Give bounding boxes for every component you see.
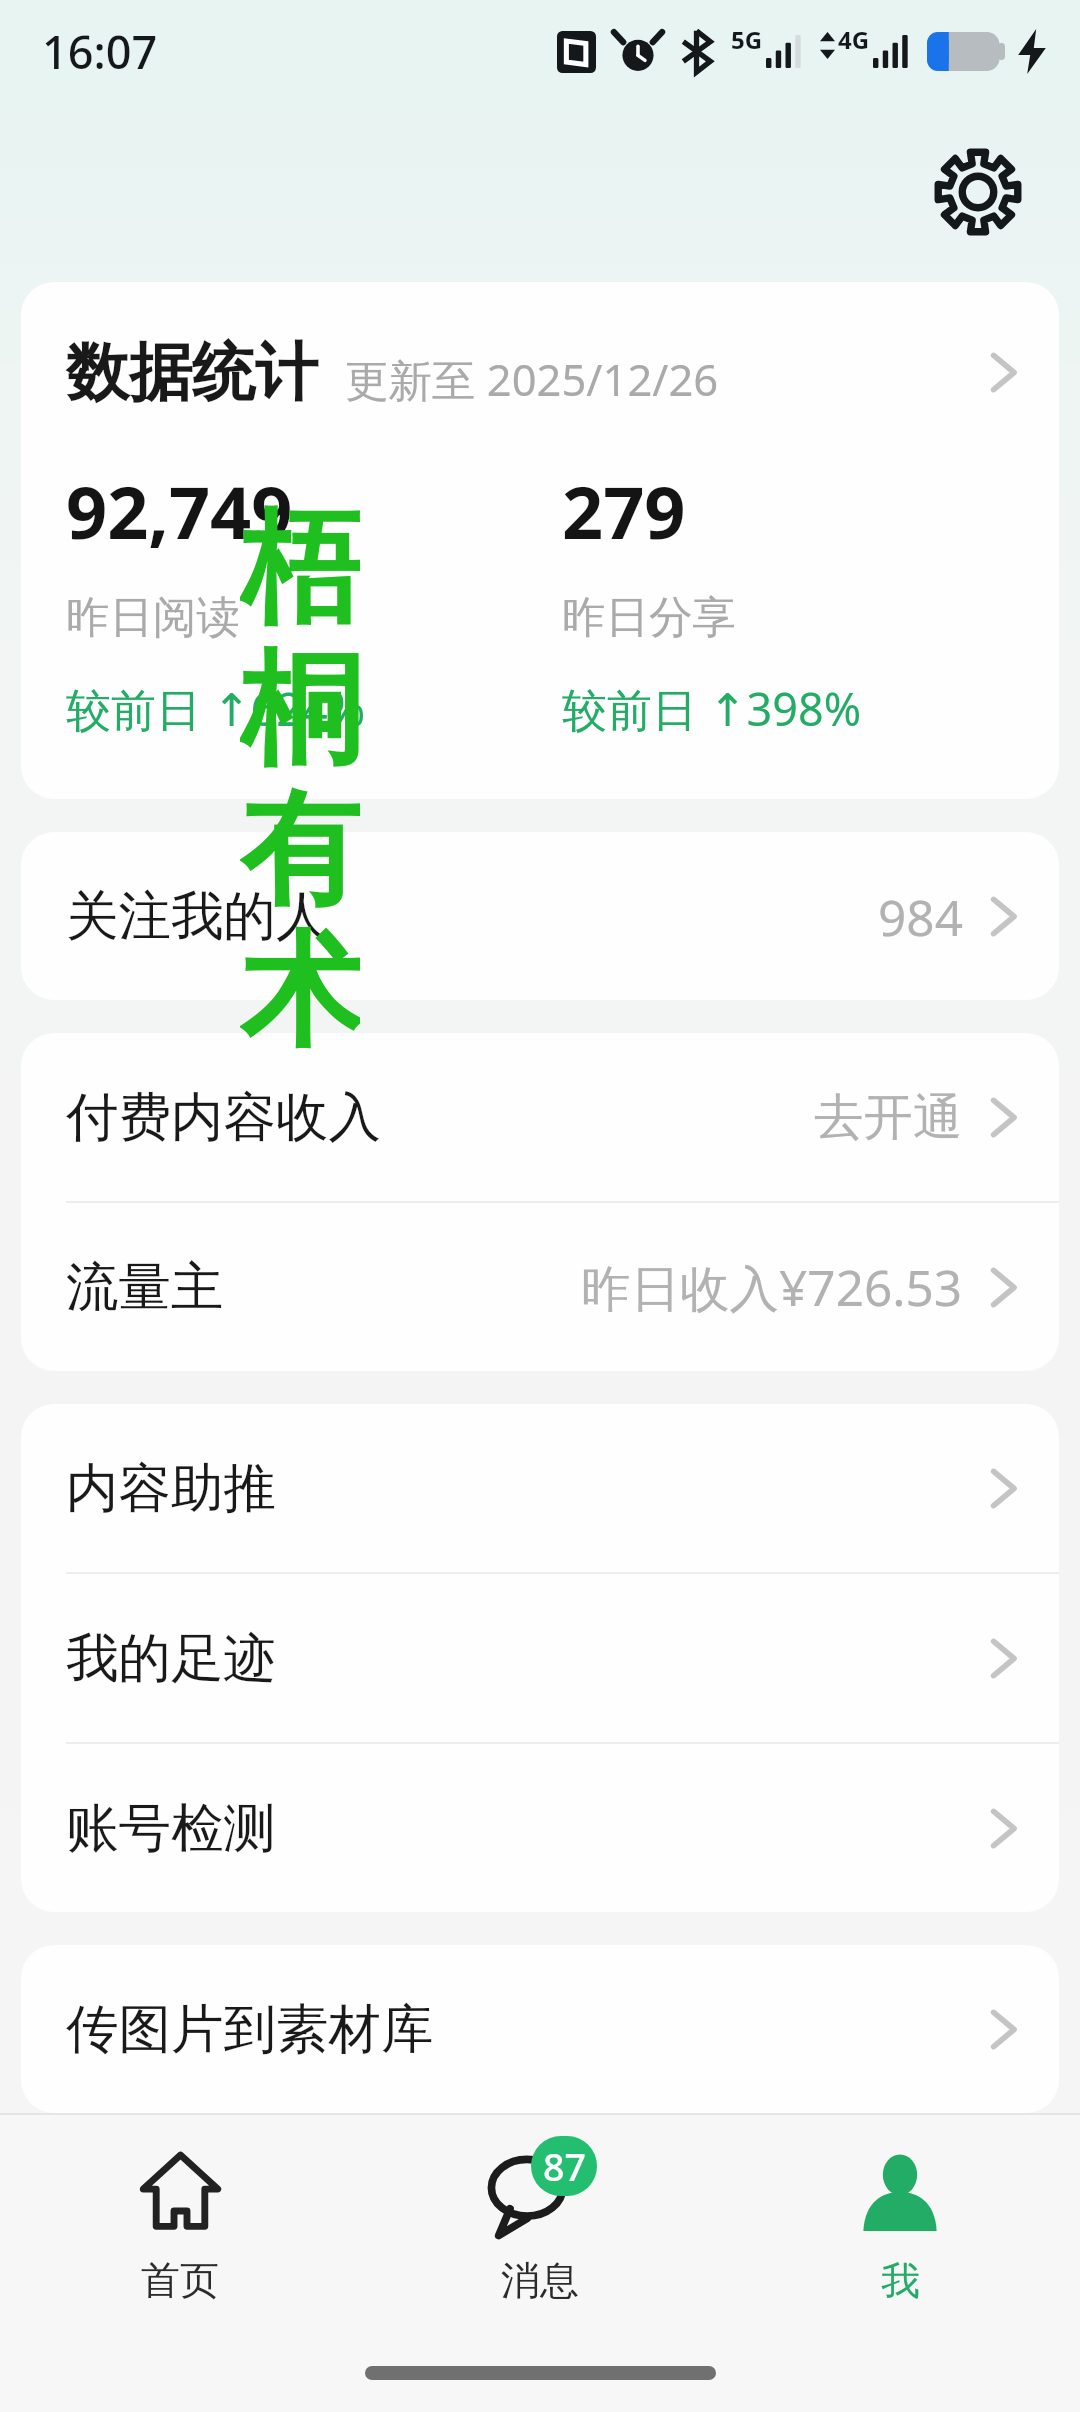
button[interactable]: Profile [720, 2115, 1080, 2334]
button[interactable]: 传图片到素材库 [21, 1945, 1059, 2113]
staticText: 较前日 ↑398% [562, 678, 862, 739]
staticText: 关注我的人 [66, 883, 329, 949]
button[interactable]: 关注我的人 [21, 832, 1059, 1000]
staticText: 较前日 ↑624% [66, 678, 366, 739]
button[interactable]: 内容助推 [21, 1404, 1059, 1572]
staticText: 流量主 [66, 1254, 224, 1320]
button[interactable]: Settings [915, 129, 1041, 255]
staticText: 桐 [240, 633, 360, 774]
button[interactable]: 账号检测 [21, 1744, 1059, 1912]
staticText: 术 [240, 915, 360, 1056]
staticText: 传图片到素材库 [66, 1996, 434, 2062]
button[interactable]: 付费内容收入 [21, 1033, 1059, 1201]
button[interactable]: 我的足迹 [21, 1574, 1059, 1742]
button[interactable]: Home [0, 2115, 360, 2334]
staticText: 我 [881, 2256, 920, 2305]
button[interactable]: 流量主 [21, 1203, 1059, 1371]
staticText: 有 [240, 774, 360, 915]
staticText: 279 [562, 462, 686, 560]
staticText: 内容助推 [66, 1455, 276, 1521]
staticText: 92,749 [66, 462, 293, 560]
staticText: 4G [838, 23, 870, 56]
staticText: 16:07 [42, 21, 158, 82]
staticText: 梧 [240, 492, 360, 633]
staticText: 消息 [501, 2256, 579, 2305]
staticText: 付费内容收入 [66, 1084, 381, 1150]
button[interactable]: Messages [360, 2115, 720, 2334]
staticText: 984 [878, 883, 963, 950]
staticText: 昨日阅读 [66, 590, 240, 645]
staticText: 更新至 2025/12/26 [345, 349, 719, 408]
staticText: 87 [543, 2141, 586, 2192]
staticText: 昨日分享 [562, 590, 736, 645]
staticText: 去开通 [814, 1086, 963, 1148]
staticText: 账号检测 [66, 1795, 276, 1861]
staticText: 数据统计 [66, 333, 318, 412]
staticText: 5G [731, 23, 763, 56]
staticText: 昨日收入¥726.53 [581, 1253, 963, 1321]
button[interactable]: 数据统计 [21, 282, 1059, 462]
staticText: 首页 [141, 2256, 219, 2305]
staticText: 我的足迹 [66, 1625, 276, 1691]
